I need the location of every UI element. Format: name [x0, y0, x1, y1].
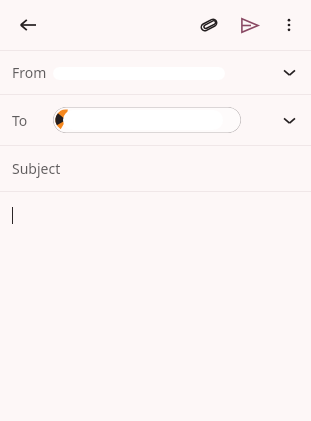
button[interactable]: [0, 192, 311, 421]
button[interactable]: [53, 107, 241, 133]
button[interactable]: Back: [6, 3, 50, 47]
staticText: To: [12, 111, 28, 130]
button[interactable]: Attach file: [189, 5, 229, 45]
staticText: Subject: [12, 159, 61, 178]
button[interactable]: Expand To: [267, 98, 311, 142]
button[interactable]: More options: [269, 5, 309, 45]
button[interactable]: Expand From: [267, 51, 311, 94]
staticText: From: [12, 63, 47, 82]
button[interactable]: Subject: [0, 146, 311, 191]
button[interactable]: To: [0, 95, 311, 145]
button[interactable]: From: [0, 51, 311, 94]
button[interactable]: Send: [229, 5, 269, 45]
